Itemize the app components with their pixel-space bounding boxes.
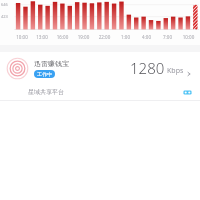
staticText: Kbps — [167, 66, 184, 76]
staticText: 16:00 — [52, 34, 73, 40]
staticText: 星域共享平台 — [28, 88, 64, 96]
staticText: 7:00 — [157, 34, 178, 40]
staticText: 迅雷赚钱宝 — [34, 59, 69, 68]
staticText: 4:00 — [136, 34, 157, 40]
staticText: 1:00 — [115, 34, 136, 40]
staticText: 22:00 — [94, 34, 115, 40]
staticText: 19:00 — [73, 34, 94, 40]
other: Device status — [7, 58, 28, 79]
staticText: 10:00 — [178, 34, 199, 40]
button[interactable]: Device status — [0, 52, 200, 84]
staticText: 工作中 — [37, 71, 52, 77]
other: Platform logo — [183, 88, 192, 97]
staticText: 646 — [1, 2, 8, 7]
staticText: 13:00 — [32, 34, 52, 40]
button[interactable]: 星域共享平台 — [0, 84, 200, 100]
staticText: 423 — [1, 14, 8, 19]
staticText: 1280 — [130, 58, 165, 78]
staticText: 10:00 — [12, 34, 32, 40]
